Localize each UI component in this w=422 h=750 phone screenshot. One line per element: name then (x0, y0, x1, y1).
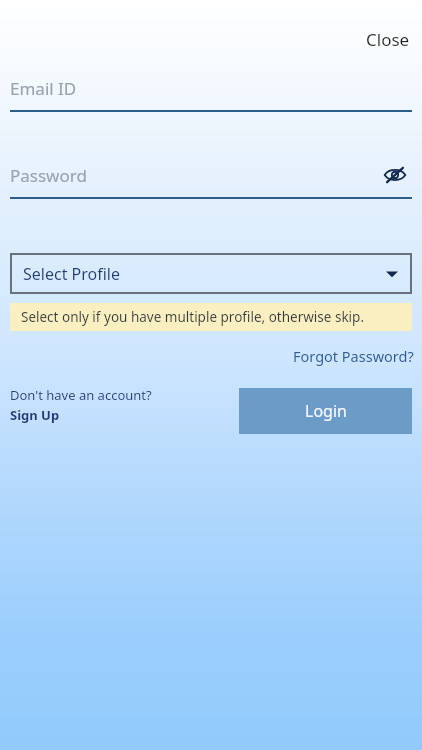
staticText: Login (305, 400, 347, 422)
button[interactable]: Select Profile (10, 253, 412, 294)
staticText: Password (10, 164, 87, 187)
button[interactable]: Show password (378, 158, 412, 192)
button[interactable]: Login (239, 388, 412, 434)
staticText: Don't have an account? (10, 386, 152, 404)
button[interactable]: Forgot Password? (285, 342, 422, 370)
button[interactable]: Close (356, 22, 420, 57)
staticText: Sign Up (10, 406, 60, 424)
staticText: Select Profile (23, 263, 121, 285)
staticText: Select only if you have multiple profile… (21, 308, 364, 326)
staticText: Close (366, 28, 410, 51)
button[interactable]: Email ID (10, 70, 412, 112)
staticText: Forgot Password? (293, 346, 414, 366)
button[interactable]: Password (10, 157, 412, 199)
staticText: Email ID (10, 77, 77, 100)
button[interactable]: Don't have an account? (10, 386, 158, 426)
